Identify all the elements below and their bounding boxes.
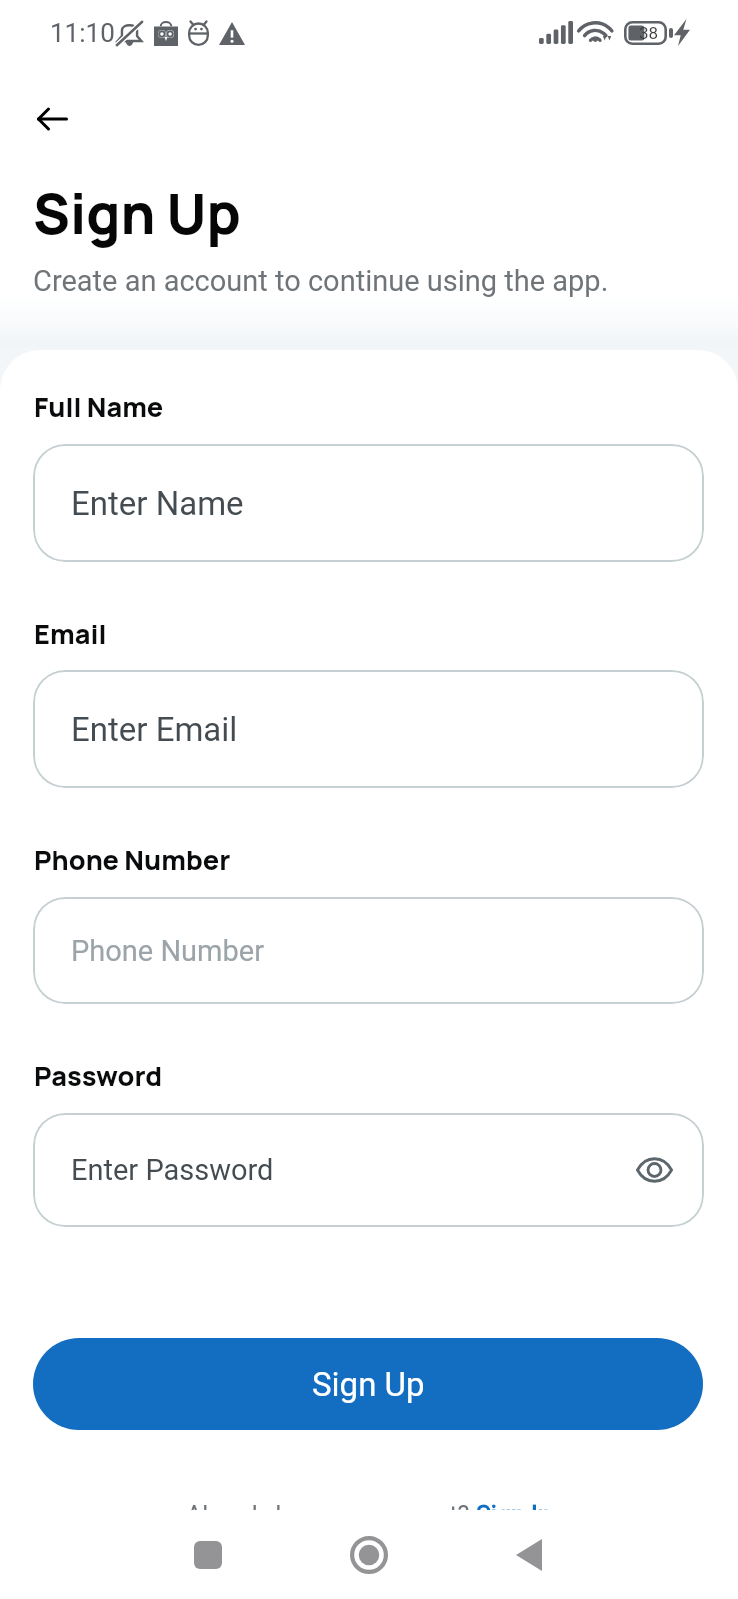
staticText: Enter Email (71, 710, 238, 749)
button[interactable]: Back (494, 1520, 564, 1590)
button[interactable]: Sign Up (33, 1338, 703, 1430)
staticText: Password (34, 1057, 163, 1094)
staticText: Sign Up (33, 175, 241, 250)
button[interactable]: Enter Password (33, 1113, 704, 1227)
staticText: Enter Password (71, 1153, 274, 1187)
button[interactable]: Show password (632, 1148, 676, 1192)
staticText: Email (34, 615, 107, 652)
button[interactable]: Enter Name (33, 444, 704, 562)
button[interactable]: Sign In (476, 1501, 552, 1530)
staticText: Enter Name (71, 484, 244, 523)
staticText: 38 (639, 23, 659, 43)
button[interactable]: Back (28, 95, 76, 143)
button[interactable]: Enter Email (33, 670, 704, 788)
staticText: Phone Number (71, 934, 264, 968)
staticText: 11:10 (50, 18, 115, 48)
staticText: Sign Up (312, 1365, 425, 1404)
staticText: Full Name (34, 388, 164, 425)
button[interactable]: Home (334, 1520, 404, 1590)
staticText: Phone Number (34, 841, 231, 878)
staticText: Already have an account? (186, 1501, 476, 1530)
staticText: Create an account to continue using the … (33, 264, 609, 298)
button[interactable]: Recent apps (173, 1520, 243, 1590)
button[interactable]: Phone Number (33, 897, 704, 1004)
